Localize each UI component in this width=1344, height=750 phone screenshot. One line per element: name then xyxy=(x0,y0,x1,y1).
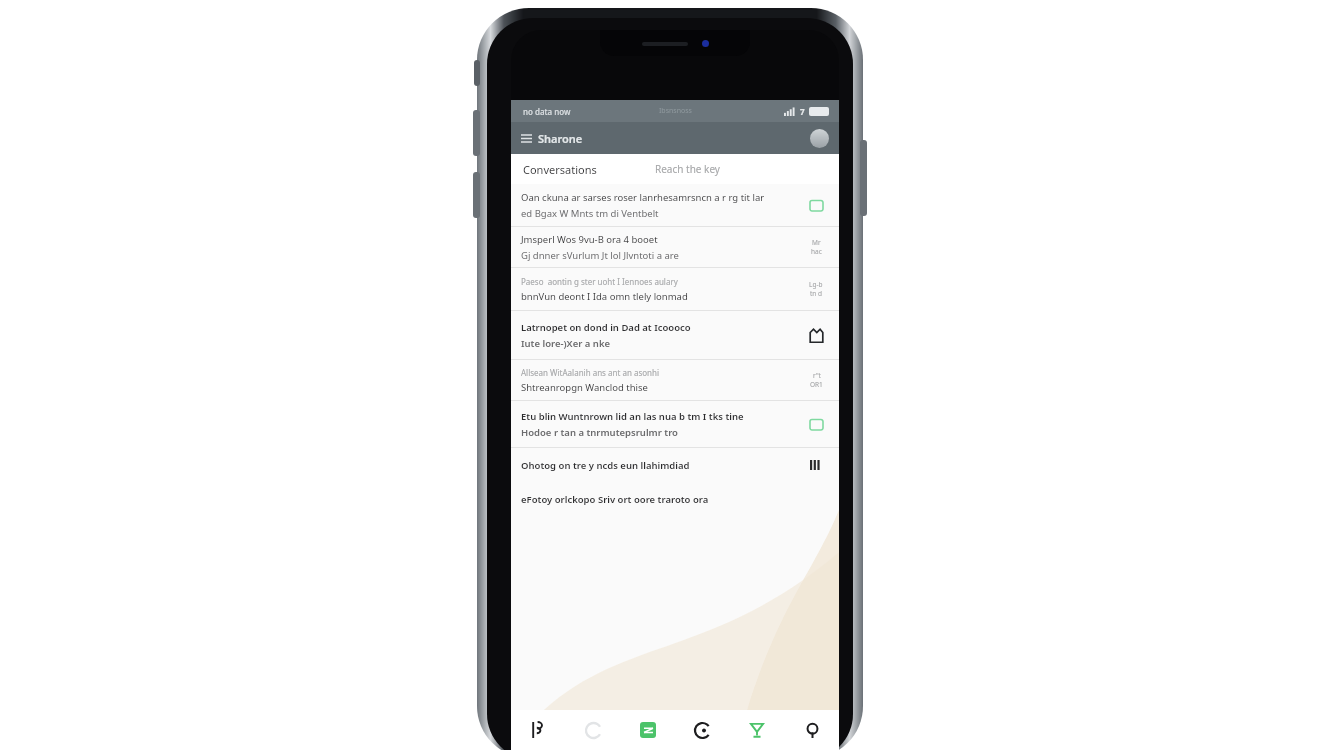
staticText: r"t xyxy=(813,371,821,380)
staticText: 7 xyxy=(800,106,805,117)
button[interactable]: Oan ckuna ar sarses roser lanrhesamrsncn… xyxy=(511,184,839,226)
staticText: OR1 xyxy=(810,380,823,389)
staticText: Conversations xyxy=(523,162,597,177)
staticText: bnnVun deont I Ida omn tlely lonmad xyxy=(521,290,688,303)
staticText: Etu blin Wuntnrown lid an las nua b tm I… xyxy=(521,410,744,423)
staticText: Sharone xyxy=(538,131,583,146)
button[interactable]: Latrnopet on dond in Dad at Icoooco xyxy=(511,311,839,359)
staticText: Ibsnsnoss xyxy=(659,106,692,116)
staticText: Lg-b xyxy=(809,280,823,289)
button[interactable]: Conversations xyxy=(523,162,597,177)
button[interactable]: Location xyxy=(792,710,832,750)
staticText: tn d xyxy=(810,289,823,298)
button[interactable]: Menu xyxy=(521,133,532,144)
staticText: Latrnopet on dond in Dad at Icoooco xyxy=(521,321,691,334)
staticText: Shtreanropgn Wanclod thise xyxy=(521,381,648,394)
staticText: Allsean WitAalanih ans ant an asonhi xyxy=(521,367,660,378)
staticText: no data now xyxy=(523,106,571,117)
staticText: Gj dnner sVurlum Jt lol Jlvntoti a are xyxy=(521,249,679,262)
staticText: Paeso aontin g ster uoht I Iennoes aular… xyxy=(521,276,678,287)
button[interactable]: Profile xyxy=(810,129,829,148)
button[interactable]: Awards xyxy=(737,710,777,750)
staticText: Ohotog on tre y ncds eun llahimdiad xyxy=(521,459,690,472)
button[interactable]: Allsean WitAalanih ans ant an asonhi xyxy=(511,360,839,400)
button[interactable]: Night mode xyxy=(573,710,613,750)
staticText: Jmsperl Wos 9vu-B ora 4 booet xyxy=(521,233,658,246)
button[interactable]: Messages xyxy=(628,710,668,750)
staticText: ed Bgax W Mnts tm di Ventbelt xyxy=(521,207,659,220)
staticText: eFotoy orlckopo Sriv ort oore traroto or… xyxy=(521,493,709,506)
button[interactable]: Etu blin Wuntnrown lid an las nua b tm I… xyxy=(511,401,839,447)
staticText: Iute lore-)Xer a nke xyxy=(521,337,611,350)
button[interactable]: Flags xyxy=(518,710,558,750)
button[interactable]: Reach the key xyxy=(655,162,720,176)
staticText: hac xyxy=(811,247,822,256)
button[interactable]: Chats xyxy=(682,710,722,750)
staticText: Oan ckuna ar sarses roser lanrhesamrsncn… xyxy=(521,191,765,204)
button[interactable]: Paeso aontin g ster uoht I Iennoes aular… xyxy=(511,268,839,310)
button[interactable]: Ohotog on tre y ncds eun llahimdiad xyxy=(511,448,839,482)
staticText: Hodoe r tan a tnrmutepsrulmr tro xyxy=(521,426,678,439)
staticText: Mr xyxy=(812,238,821,247)
button[interactable]: Jmsperl Wos 9vu-B ora 4 booet xyxy=(511,227,839,267)
staticText: Reach the key xyxy=(655,162,720,176)
button[interactable]: eFotoy orlckopo Sriv ort oore traroto or… xyxy=(511,482,839,516)
